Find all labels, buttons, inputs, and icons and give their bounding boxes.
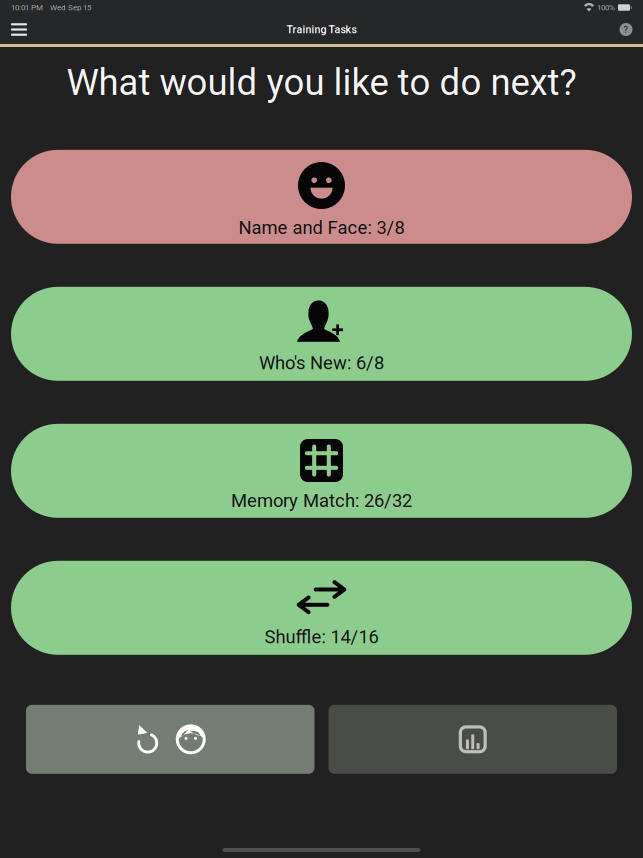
staticText: 10:01 PM: [11, 3, 43, 12]
staticText: Wed Sep 15: [50, 3, 91, 12]
button[interactable]: Memory Match: 26/32: [11, 424, 632, 518]
button[interactable]: Shuffle: 14/16: [11, 561, 632, 655]
button[interactable]: Name and Face: 3/8: [11, 150, 632, 244]
button[interactable]: Help: [613, 16, 639, 42]
button[interactable]: Who's New: 6/8: [11, 287, 632, 381]
button[interactable]: Statistics: [328, 705, 617, 774]
staticText: 100%: [597, 3, 615, 12]
staticText: Who's New: 6/8: [259, 352, 384, 374]
staticText: Name and Face: 3/8: [238, 217, 404, 239]
staticText: ?: [623, 24, 628, 35]
staticText: Shuffle: 14/16: [264, 626, 378, 648]
button[interactable]: Restart: [26, 705, 314, 774]
staticText: Training Tasks: [286, 23, 356, 36]
staticText: Memory Match: 26/32: [231, 490, 412, 512]
button[interactable]: Menu: [4, 16, 34, 42]
staticText: What would you like to do next?: [66, 61, 576, 104]
